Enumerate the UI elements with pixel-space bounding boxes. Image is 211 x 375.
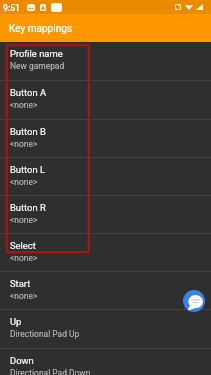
staticText: <none> [10,139,38,149]
staticText: Button R [10,202,46,213]
button[interactable]: Profile name [0,42,211,81]
staticText: Directional Pad Down [10,368,91,375]
staticText: Profile name [10,48,63,59]
button[interactable]: Button L [0,158,211,196]
staticText: Down [10,355,34,366]
staticText: Button A [10,87,47,98]
button[interactable]: Button B [0,120,211,158]
staticText: New gamepad [10,61,65,71]
staticText: Up [10,316,22,327]
button[interactable]: Down [0,349,211,375]
staticText: <none> [10,100,38,110]
staticText: Directional Pad Up [10,329,80,339]
button[interactable]: Open chat [183,290,205,312]
staticText: Start [10,278,31,289]
button[interactable]: Start [0,272,211,310]
staticText: 9:51 [3,3,20,13]
staticText: Button B [10,126,46,137]
button[interactable]: Select [0,234,211,272]
button[interactable]: Button A [0,81,211,120]
staticText: Key mappings [9,23,73,35]
staticText: <none> [10,177,38,187]
staticText: <none> [10,291,38,301]
staticText: Select [10,240,36,251]
staticText: Button L [10,164,46,175]
staticText: <none> [10,215,38,225]
button[interactable]: Up [0,310,211,349]
staticText: <none> [10,253,38,263]
button[interactable]: Button R [0,196,211,234]
